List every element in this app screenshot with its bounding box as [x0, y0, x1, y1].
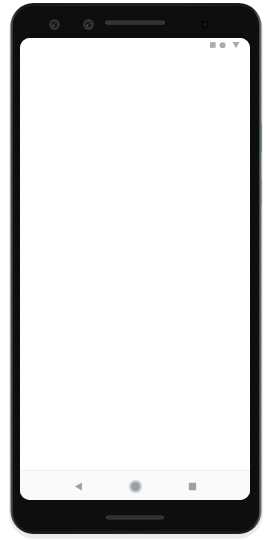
button[interactable]: Recent apps: [173, 474, 211, 498]
button[interactable]: Home: [116, 474, 154, 498]
button[interactable]: Back: [59, 474, 97, 498]
